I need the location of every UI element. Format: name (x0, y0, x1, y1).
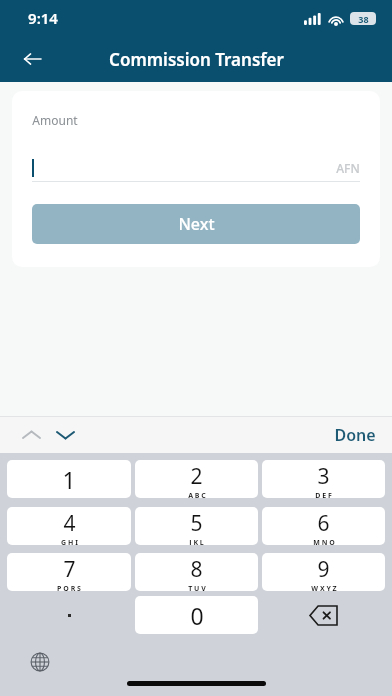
staticText: 9:14 (28, 8, 58, 28)
button[interactable]: 2 (135, 460, 258, 498)
staticText: W X Y Z (311, 584, 337, 591)
staticText: 9 (317, 555, 330, 584)
staticText: G H I (61, 538, 78, 545)
staticText: J K L (189, 538, 204, 545)
button[interactable]: 8 (135, 553, 258, 591)
button[interactable]: Previous field (14, 418, 48, 452)
staticText: Amount (32, 112, 78, 128)
button[interactable]: 1 (7, 460, 131, 498)
button[interactable]: 6 (262, 507, 385, 545)
staticText: Done (334, 424, 376, 446)
staticText: M N O (313, 538, 335, 545)
button[interactable]: Back (10, 37, 54, 81)
button[interactable]: Done (334, 424, 376, 446)
staticText: 0 (190, 600, 204, 631)
staticText: Next (178, 213, 215, 235)
button[interactable]: AFN (32, 155, 360, 181)
button[interactable]: 9 (262, 553, 385, 591)
button[interactable]: 0 (135, 596, 258, 634)
staticText: 4 (63, 509, 76, 538)
staticText: 5 (190, 509, 203, 538)
staticText: Commission Transfer (109, 48, 284, 71)
staticText: 1 (62, 464, 76, 495)
button[interactable]: 7 (7, 553, 131, 591)
staticText: D E F (315, 491, 332, 498)
staticText: 7 (63, 555, 76, 584)
staticText: AFN (336, 160, 360, 176)
button[interactable]: Decimal point (7, 596, 131, 634)
button[interactable]: 4 (7, 507, 131, 545)
button[interactable]: Backspace (262, 596, 385, 634)
staticText: 3 (317, 462, 330, 491)
button[interactable]: Next field (48, 418, 82, 452)
staticText: A B C (188, 491, 206, 498)
button[interactable]: Next (32, 204, 360, 244)
staticText: 2 (190, 462, 203, 491)
button[interactable]: 5 (135, 507, 258, 545)
staticText: 38 (358, 13, 369, 25)
staticText: P Q R S (57, 584, 81, 591)
staticText: T U V (188, 584, 206, 591)
staticText: 6 (317, 509, 330, 538)
button[interactable]: Change keyboard (24, 646, 56, 678)
button[interactable]: 3 (262, 460, 385, 498)
staticText: 8 (190, 555, 203, 584)
